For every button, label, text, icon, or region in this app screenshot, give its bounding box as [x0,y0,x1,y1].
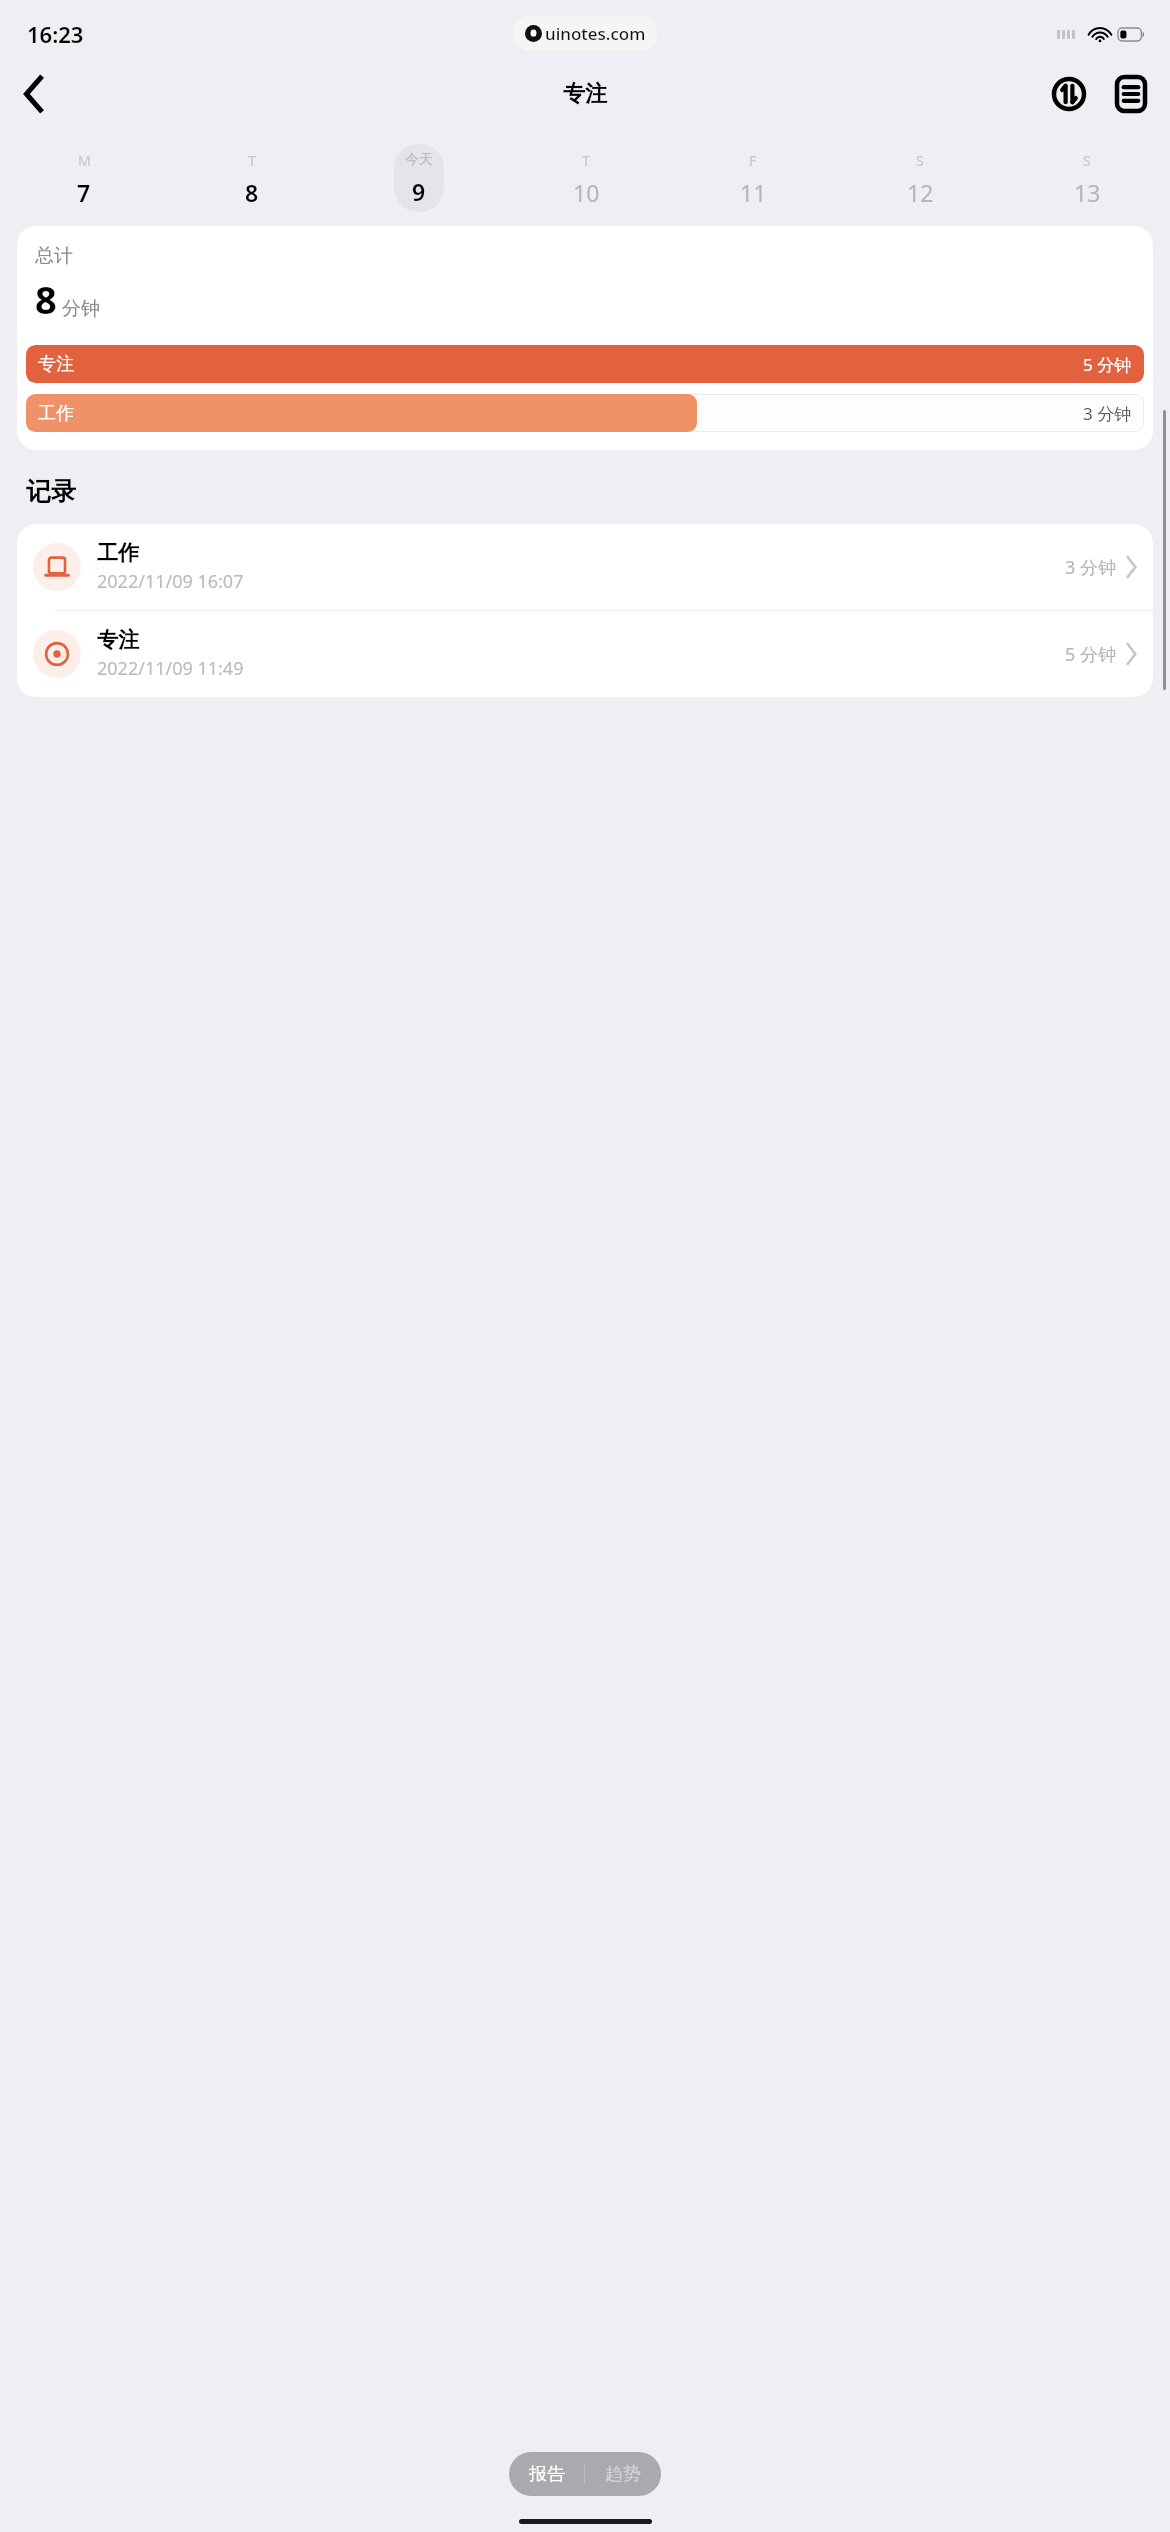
button[interactable]: 专注 [17,611,1153,697]
staticText: 3 分钟 [1065,555,1116,580]
button[interactable]: F [728,144,778,212]
staticText: 总计 [35,244,73,268]
staticText: T [248,151,256,170]
staticText: 3 分钟 [1083,402,1132,425]
staticText: 2022/11/09 11:49 [97,656,244,681]
button[interactable]: S [895,144,945,212]
staticText: 5 分钟 [1065,642,1116,667]
button[interactable]: 专注 [26,345,1144,383]
staticText: 今天 [405,151,433,169]
button[interactable]: 工作 [17,524,1153,610]
button[interactable]: List [1108,71,1154,117]
staticText: S [916,151,924,170]
staticText: 专注 [563,80,607,108]
button[interactable]: 工作 [26,394,1144,432]
staticText: 10 [573,177,600,203]
button[interactable]: 报告 [509,2452,584,2496]
staticText: 16:23 [27,19,84,49]
staticText: 报告 [529,2463,565,2486]
staticText: 专注 [97,627,139,653]
staticText: 8 [35,273,57,325]
button[interactable]: Back [10,70,58,118]
staticText: 12 [907,177,934,203]
button[interactable]: T [227,144,277,212]
staticText: 9 [412,176,426,203]
staticText: 7 [77,177,91,203]
staticText: 专注 [38,353,74,376]
staticText: 工作 [38,402,74,425]
staticText: M [78,151,91,170]
button[interactable]: Sort [1046,71,1092,117]
staticText: 5 分钟 [1083,353,1132,376]
button[interactable]: T [561,144,611,212]
staticText: uinotes.com [545,22,646,45]
staticText: 2022/11/09 16:07 [97,569,244,594]
staticText: T [582,151,590,170]
button[interactable]: 趋势 [585,2452,661,2496]
staticText: 11 [740,177,767,203]
staticText: 分钟 [62,297,100,321]
staticText: 趋势 [605,2463,641,2486]
staticText: 工作 [97,540,139,566]
button[interactable]: 今天 [394,144,444,212]
staticText: 记录 [26,476,76,507]
button[interactable]: S [1062,144,1112,212]
staticText: F [749,151,757,170]
staticText: 8 [245,177,259,203]
button[interactable]: M [59,144,109,212]
staticText: S [1083,151,1091,170]
staticText: 13 [1074,177,1101,203]
